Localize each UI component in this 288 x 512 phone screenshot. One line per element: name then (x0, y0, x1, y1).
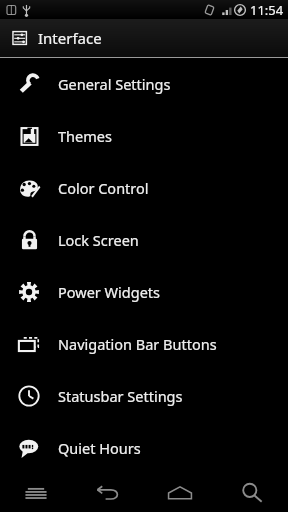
button[interactable]: Search (216, 474, 288, 512)
button[interactable]: Lock Screen (0, 214, 288, 266)
button[interactable]: Quiet Hours (0, 422, 288, 474)
button[interactable]: Menu (0, 474, 72, 512)
button[interactable]: Power Widgets (0, 266, 288, 318)
staticText: 11:54 (250, 1, 284, 19)
button[interactable]: Themes (0, 110, 288, 162)
button[interactable]: Color Control (0, 162, 288, 214)
staticText: Themes (58, 126, 112, 146)
staticText: Color Control (58, 178, 149, 198)
staticText: Statusbar Settings (58, 386, 183, 406)
staticText: Interface (38, 28, 102, 48)
button[interactable]: Back (72, 474, 144, 512)
staticText: Navigation Bar Buttons (58, 334, 217, 354)
button[interactable]: Navigation Bar Buttons (0, 318, 288, 370)
button[interactable]: Interface (0, 19, 288, 57)
button[interactable]: Home (144, 474, 216, 512)
button[interactable]: Statusbar Settings (0, 370, 288, 422)
button[interactable]: General Settings (0, 58, 288, 110)
staticText: Quiet Hours (58, 438, 141, 458)
staticText: General Settings (58, 74, 171, 94)
staticText: Lock Screen (58, 230, 139, 250)
staticText: Power Widgets (58, 282, 161, 302)
